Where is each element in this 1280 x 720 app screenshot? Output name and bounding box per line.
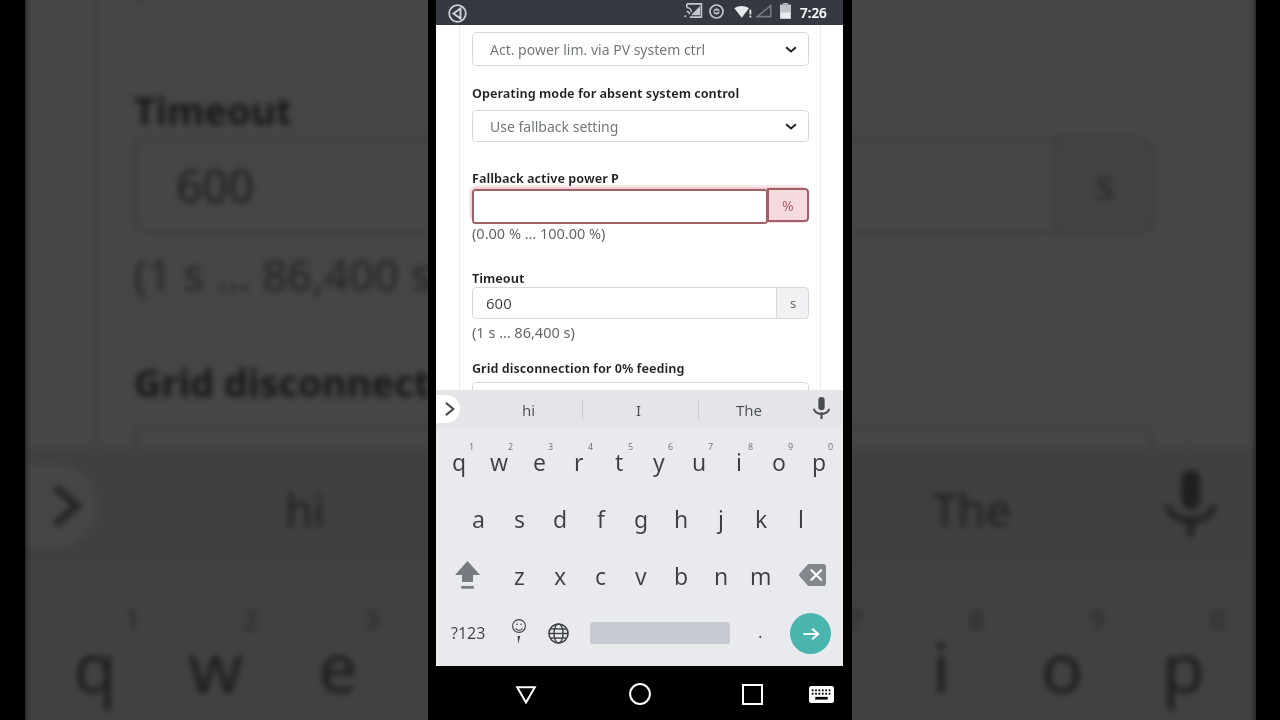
button[interactable]: 4 [559,441,599,487]
staticText: i [736,446,742,477]
staticText: w [490,446,509,477]
button[interactable]: Voice input [805,388,837,427]
staticText: 8 [748,440,754,452]
button[interactable]: Emoji [499,610,539,656]
button[interactable]: a [458,495,499,541]
button[interactable]: 600 [472,287,809,319]
button[interactable]: I [583,390,698,429]
staticText: u [692,446,707,477]
staticText: Timeout [472,270,525,287]
button[interactable]: Recents [730,672,774,716]
button[interactable]: . [740,610,780,656]
staticText: 0 [828,440,834,452]
button[interactable]: 7 [760,603,881,720]
button[interactable]: 8 [881,603,1002,720]
staticText: s [514,503,526,534]
staticText: v [635,560,647,591]
button[interactable]: Switch language [538,610,578,656]
button[interactable]: l [781,495,821,541]
button[interactable]: 9 [759,441,799,487]
button[interactable]: Space [581,610,739,656]
button[interactable]: 5 [599,441,639,487]
button[interactable]: Enter [786,610,834,656]
button[interactable]: n [701,552,741,598]
staticText: n [714,560,729,591]
staticText: y [681,618,717,711]
button[interactable]: The [820,448,1144,566]
button[interactable]: Home [618,672,662,716]
button[interactable] [472,382,809,390]
staticText: ?123 [451,622,486,644]
button[interactable]: Shift [436,552,498,598]
button[interactable]: z [499,552,540,598]
staticText: Grid disconnection for 0% feeding [472,360,685,377]
button[interactable] [134,424,1153,448]
button[interactable]: j [701,495,741,541]
staticText: k [755,503,768,534]
button[interactable]: x [540,552,581,598]
button[interactable]: v [621,552,661,598]
button[interactable]: Switch keyboard [799,672,843,716]
button[interactable]: 5 [518,603,639,720]
button[interactable]: m [741,552,781,598]
button[interactable]: 3 [519,441,559,487]
button[interactable]: hi [98,448,466,566]
button[interactable]: hi [460,390,582,429]
staticText: r [442,618,472,711]
staticText: p [1162,618,1207,711]
button[interactable]: 7 [679,441,719,487]
staticText: a [472,503,485,534]
button[interactable]: Back [504,672,548,716]
button[interactable]: 2 [479,441,519,487]
button[interactable]: % [472,188,809,224]
button[interactable]: k [741,495,781,541]
button[interactable]: 4 [397,603,518,720]
button[interactable]: b [661,552,701,598]
button[interactable]: The [699,390,806,429]
button[interactable]: 600 [134,137,1153,234]
staticText: Use fallback setting [490,117,784,136]
button[interactable]: 3 [276,603,397,720]
button[interactable]: Voice input [1141,442,1238,560]
button[interactable]: 6 [639,441,679,487]
button[interactable]: c [581,552,621,598]
button[interactable]: 1 [37,603,155,720]
button[interactable]: Use fallback setting [472,110,809,142]
button[interactable]: Expand suggestions [436,395,460,423]
staticText: q [452,446,467,477]
button[interactable]: g [621,495,661,541]
button[interactable]: 9 [1002,603,1123,720]
staticText: i [932,618,950,711]
button[interactable]: ?123 [438,610,498,656]
button[interactable]: s [499,495,540,541]
button[interactable]: 1 [440,441,479,487]
button[interactable]: I [469,448,817,566]
button[interactable]: Back [448,4,467,23]
staticText: g [634,503,649,534]
staticText: y [653,446,665,477]
staticText: Fallback active power P [472,170,619,187]
button[interactable]: 2 [155,603,276,720]
button[interactable]: 8 [719,441,759,487]
button[interactable]: d [540,495,581,541]
staticText: The [736,400,763,420]
button[interactable]: f [581,495,621,541]
staticText [188,445,1077,448]
button[interactable]: Act. power lim. via PV system ctrl [472,32,809,66]
staticText: m [750,560,772,591]
button[interactable]: 0 [799,441,839,487]
staticText: hi [522,400,536,420]
button[interactable]: Expand suggestions [0,463,98,548]
button[interactable]: h [661,495,701,541]
staticText: h [674,503,689,534]
button[interactable]: Backspace [784,552,840,598]
staticText: I [630,479,648,539]
button[interactable]: 6 [639,603,760,720]
button[interactable]: 0 [1123,603,1244,720]
staticText: 1 [469,440,475,452]
staticText: 600 [176,155,255,215]
